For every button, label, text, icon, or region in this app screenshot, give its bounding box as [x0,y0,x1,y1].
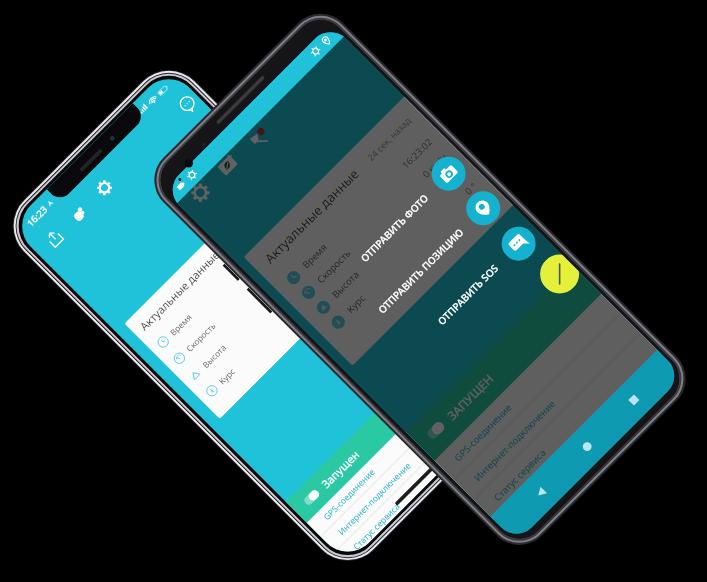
button[interactable]: Высота [184,241,329,386]
button[interactable]: Settings [185,177,216,208]
button[interactable]: Recents [615,381,652,418]
staticText: 16:23:02 [399,135,435,172]
button[interactable]: Marker [243,123,275,154]
staticText: Время [167,311,194,338]
button[interactable]: Touch [66,201,91,227]
staticText: ОТПРАВИТЬ SOS [434,261,502,328]
button[interactable]: Время [151,208,297,354]
staticText: Скорость [184,320,218,354]
button[interactable]: Send SOS [495,220,543,268]
button[interactable]: Курс [326,177,483,334]
staticText: GPS-соединение [451,401,515,464]
button[interactable]: Статус сервиса [336,393,507,564]
staticText: Высота [329,268,362,301]
staticText: Статус сервиса [491,446,549,504]
button[interactable]: GPS-соединение [434,294,621,480]
staticText: Актуальные данные [260,164,363,267]
staticText: 0 м [307,245,325,263]
staticText: Курс [344,291,369,316]
staticText: 24 сек. назад [364,114,413,163]
staticText: GPS-соединение [321,466,378,523]
staticText: 0 ° [326,261,341,277]
button[interactable]: Back [523,474,560,511]
button[interactable]: Статус сервиса [474,333,661,520]
button[interactable]: Chat [175,92,201,117]
staticText: ОТПРАВИТЬ ПОЗИЦИЮ [375,225,466,316]
button[interactable]: Close menu [532,249,584,302]
button[interactable]: Время [281,133,438,290]
staticText: 0 км/ч [283,229,309,255]
button[interactable]: Home [569,428,606,465]
button[interactable]: Курс [200,257,346,403]
staticText: Интернет-подключение [336,459,414,538]
staticText: 16:23 [24,203,51,230]
button[interactable]: Скорость [167,225,313,370]
staticText: Курс [216,365,237,386]
staticText: ЗАПУЩЕН [444,370,497,423]
button[interactable]: Send position [459,184,507,232]
button[interactable]: Скорость [296,147,453,304]
staticText: 0 ° [462,180,480,198]
button[interactable]: Интернет-подключение [321,378,495,552]
button[interactable]: Интернет-подключение [454,314,641,500]
button[interactable]: Settings [92,175,117,201]
staticText: Скорость [314,246,354,286]
staticText: 24 сек. назад [232,196,276,239]
staticText: 16:23:02 [261,213,293,244]
button[interactable]: GPS-соединение [307,364,480,537]
staticText: Интернет-подключение [471,397,558,484]
staticText: Статус сервиса [351,500,403,553]
staticText: Высота [200,341,229,370]
button[interactable]: Send photo [424,150,473,198]
staticText: 0 м [444,165,465,186]
button[interactable]: Share [41,225,67,251]
staticText: Актуальные данные [136,247,223,333]
staticText: 0 км/ч [420,150,450,181]
staticText: Запущен [318,447,362,491]
staticText: ОТПРАВИТЬ ФОТО [357,191,432,265]
button[interactable]: Высота [311,162,468,319]
staticText: Время [299,241,330,271]
button[interactable]: ЗАПУЩЕН [415,274,592,451]
button[interactable]: Map [212,150,243,181]
button[interactable]: Запущен [295,352,457,514]
